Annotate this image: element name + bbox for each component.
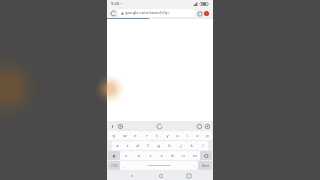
staticText: l: [202, 143, 204, 149]
staticText: q: [112, 133, 115, 139]
button[interactable]: GIF: [117, 123, 123, 129]
staticText: d: [136, 143, 139, 149]
staticText: s: [126, 143, 129, 149]
button[interactable]: v: [156, 151, 167, 160]
staticText: p: [206, 133, 209, 139]
staticText: k: [190, 143, 193, 149]
button[interactable]: r: [141, 131, 152, 140]
button[interactable]: Reload: [110, 10, 117, 17]
staticText: c: [149, 153, 152, 159]
button[interactable]: Emoji: [196, 123, 202, 129]
button[interactable]: e: [130, 131, 141, 140]
staticText: j: [180, 143, 182, 149]
button[interactable]: q: [108, 131, 119, 140]
staticText: z: [125, 153, 127, 159]
button[interactable]: z: [120, 151, 132, 160]
button[interactable]: Google: [156, 123, 163, 130]
staticText: b: [171, 153, 174, 159]
button[interactable]: h: [164, 141, 175, 150]
button[interactable]: u: [172, 131, 182, 140]
button[interactable]: Home: [156, 171, 165, 180]
button[interactable]: Back: [127, 171, 136, 180]
button[interactable]: More options: [203, 10, 210, 17]
button[interactable]: j: [175, 141, 186, 150]
button[interactable]: google.com/search?q=: [118, 9, 195, 17]
staticText: t: [156, 133, 158, 139]
button[interactable]: l: [197, 141, 208, 150]
button[interactable]: Recents: [184, 171, 193, 180]
button[interactable]: o: [192, 131, 202, 140]
staticText: n: [182, 153, 185, 159]
staticText: i: [186, 133, 188, 139]
button[interactable]: g: [153, 141, 164, 150]
staticText: e: [134, 133, 137, 139]
button[interactable]: i: [182, 131, 192, 140]
button[interactable]: p: [202, 131, 212, 140]
staticText: x: [137, 153, 140, 159]
button[interactable]: y: [162, 131, 172, 140]
staticText: f: [147, 143, 149, 149]
button[interactable]: Tabs: [196, 10, 203, 17]
button[interactable]: x: [132, 151, 144, 160]
button[interactable]: f: [142, 141, 153, 150]
button[interactable]: w: [119, 131, 130, 140]
button[interactable]: t: [152, 131, 162, 140]
staticText: o: [196, 133, 199, 139]
staticText: ,: [123, 163, 125, 169]
staticText: ?123: [111, 164, 118, 168]
button[interactable]: ?123: [108, 161, 120, 170]
button[interactable]: ,: [120, 161, 128, 170]
button[interactable]: k: [186, 141, 197, 150]
staticText: .: [193, 163, 195, 169]
button[interactable]: Voice input: [110, 124, 115, 129]
button[interactable]: m: [189, 151, 200, 160]
staticText: a: [116, 143, 119, 149]
button[interactable]: d: [132, 141, 142, 150]
staticText: 9:44: [111, 1, 119, 6]
staticText: Next: [202, 164, 209, 168]
staticText: h: [168, 143, 171, 149]
button[interactable]: Backspace: [200, 151, 212, 160]
staticText: g: [157, 143, 160, 149]
button[interactable]: s: [122, 141, 132, 150]
button[interactable]: c: [144, 151, 156, 160]
staticText: v: [160, 153, 163, 159]
button[interactable]: Settings: [204, 123, 210, 129]
staticText: w: [123, 133, 127, 139]
button[interactable]: b: [167, 151, 178, 160]
staticText: u: [176, 133, 179, 139]
button[interactable]: a: [112, 141, 122, 150]
staticText: google.com/search?q=: [125, 10, 170, 16]
button[interactable]: n: [178, 151, 189, 160]
staticText: r: [146, 133, 148, 139]
button[interactable]: Next: [198, 161, 212, 170]
staticText: m: [193, 153, 197, 159]
staticText: y: [166, 133, 169, 139]
button[interactable]: Shift: [108, 151, 120, 160]
button[interactable]: Space: [128, 161, 190, 170]
